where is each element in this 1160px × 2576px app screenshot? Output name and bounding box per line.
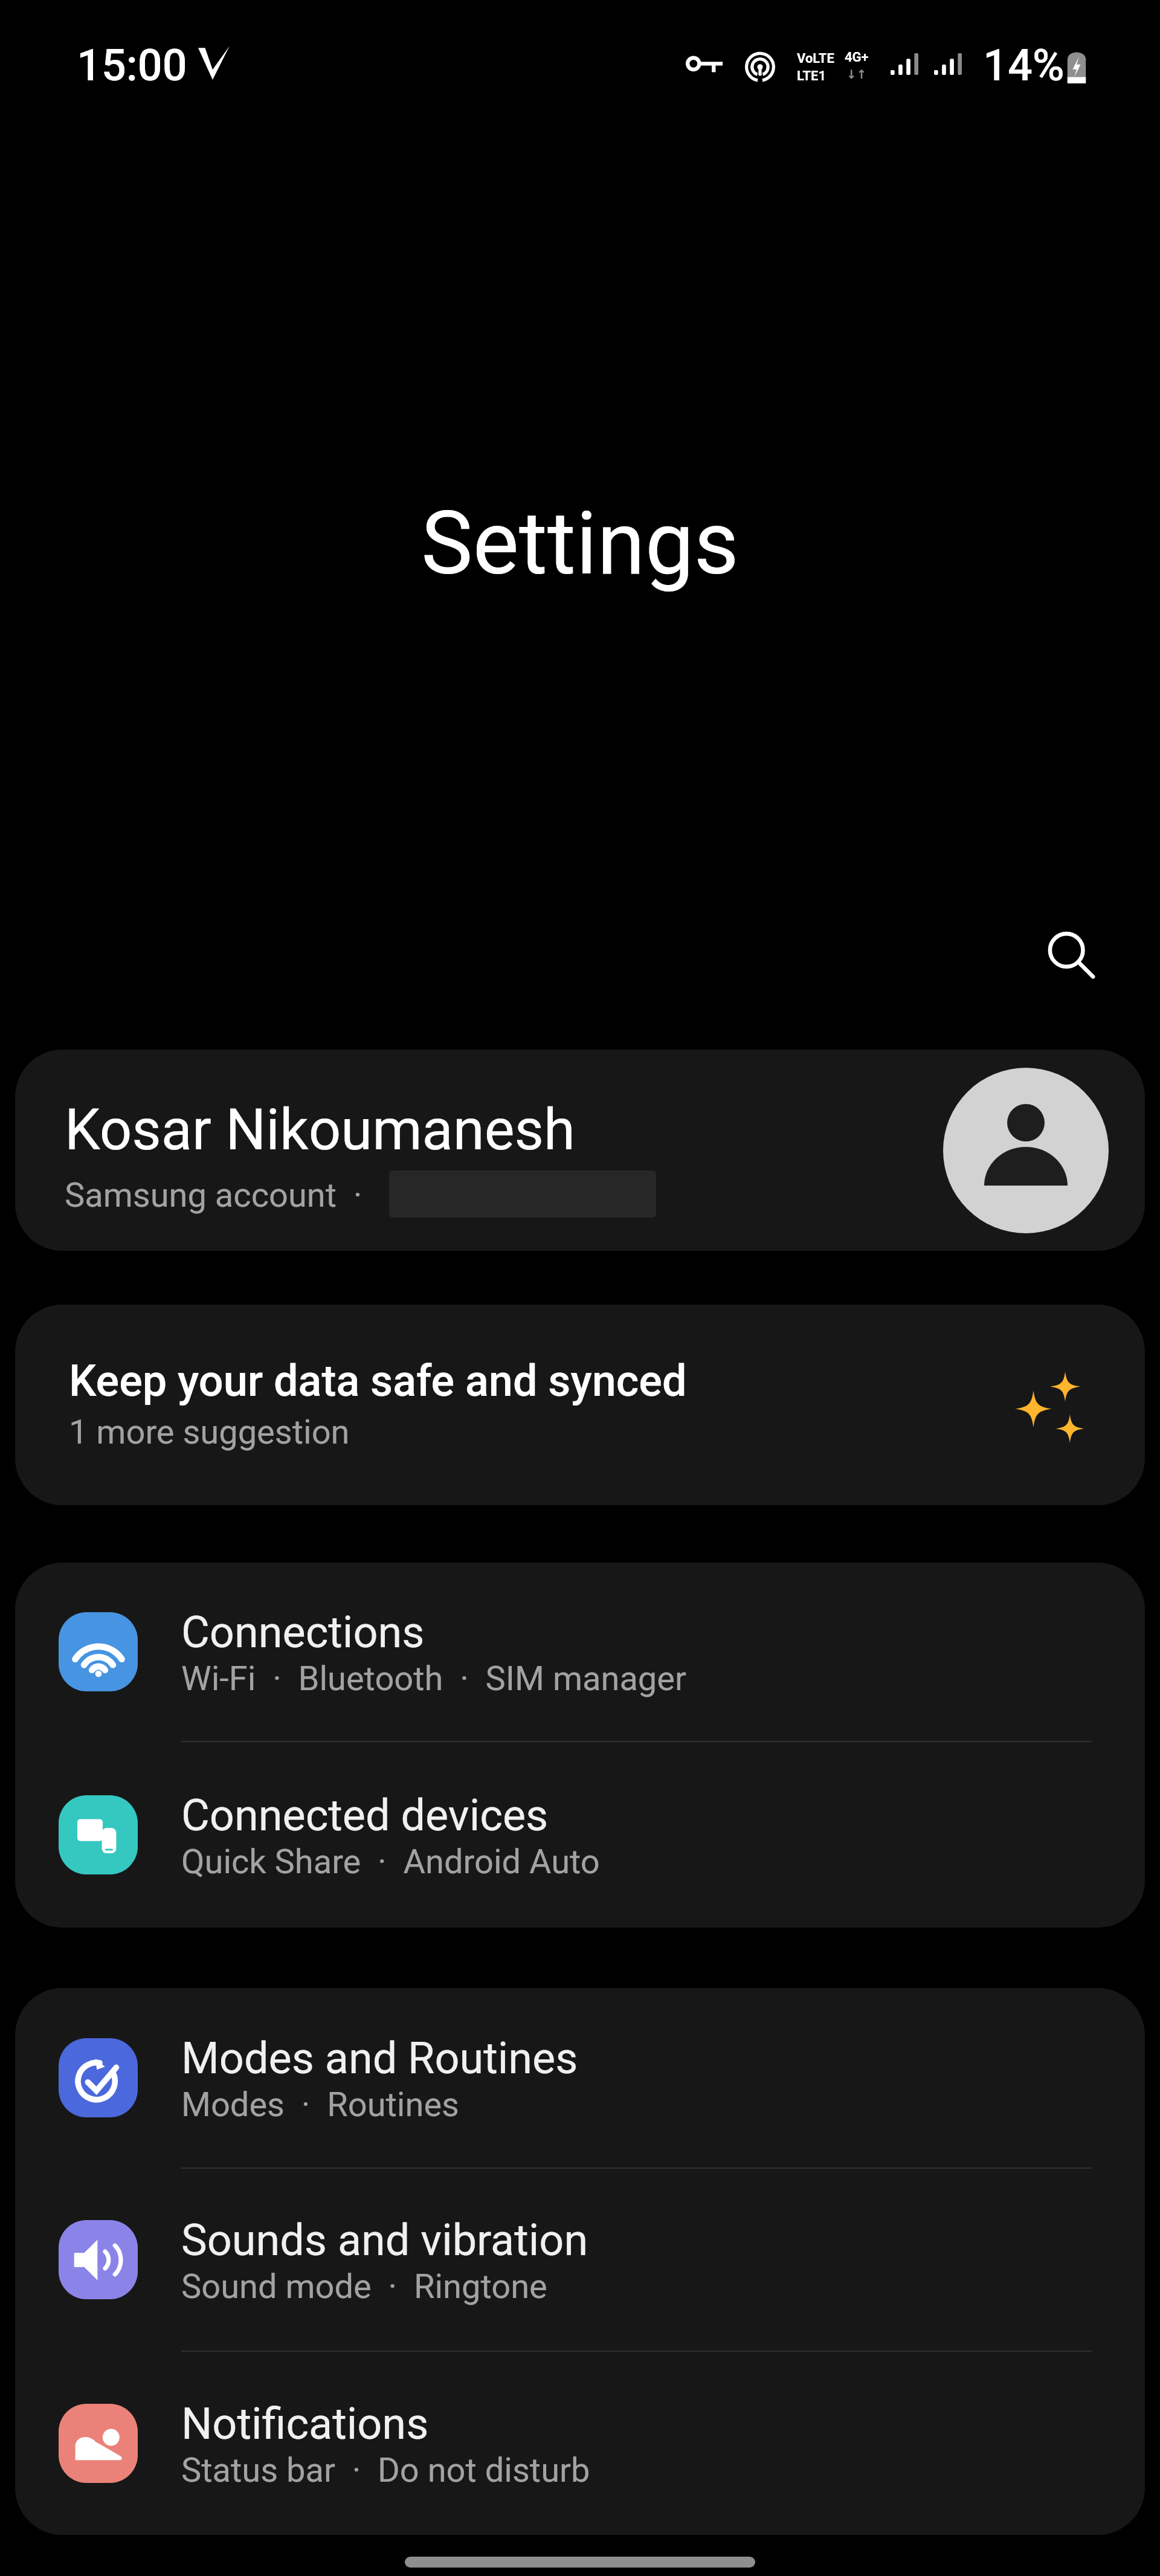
button[interactable]: Notifications xyxy=(15,2352,1145,2535)
staticText: VoLTE xyxy=(797,51,834,66)
button[interactable]: Sounds and vibration xyxy=(15,2169,1145,2351)
staticText: Connected devices xyxy=(181,1790,549,1841)
staticText: Kosar Nikoumanesh xyxy=(65,1097,575,1163)
button[interactable]: Connections xyxy=(15,1563,1145,1741)
staticText: Settings xyxy=(0,492,1160,595)
staticText: 1 more suggestion xyxy=(69,1412,350,1452)
staticText: LTE1 xyxy=(797,68,826,84)
staticText: Quick Share · Android Auto xyxy=(181,1842,600,1882)
staticText: 4G+ xyxy=(845,50,869,65)
staticText: Sound mode · Ringtone xyxy=(181,2267,547,2306)
staticText: Status bar · Do not disturb xyxy=(181,2450,590,2490)
staticText: Connections xyxy=(181,1607,425,1658)
button[interactable]: Keep your data safe and synced xyxy=(15,1305,1145,1505)
staticText: Keep your data safe and synced xyxy=(69,1355,687,1406)
button[interactable]: Connected devices xyxy=(15,1742,1145,1928)
staticText: Samsung account · xyxy=(65,1175,362,1215)
staticText: Notifications xyxy=(181,2398,429,2449)
staticText: 14% xyxy=(983,40,1065,91)
button[interactable]: Kosar Nikoumanesh xyxy=(15,1050,1145,1251)
staticText: Modes · Routines xyxy=(181,2085,459,2125)
staticText: Modes and Routines xyxy=(181,2033,578,2084)
button[interactable]: Search xyxy=(1029,914,1114,999)
staticText: Sounds and vibration xyxy=(181,2215,588,2265)
staticText: ↓↑ xyxy=(846,67,867,81)
staticText: Wi-Fi · Bluetooth · SIM manager xyxy=(181,1659,686,1699)
button[interactable]: Modes and Routines xyxy=(15,1988,1145,2168)
staticText: 15:00 xyxy=(77,40,187,91)
